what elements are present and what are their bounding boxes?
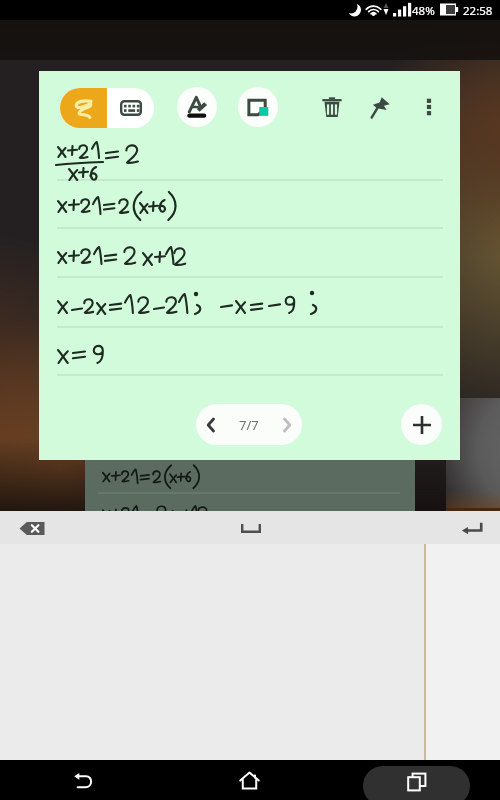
button[interactable]: Home xyxy=(166,760,333,800)
button[interactable]: More options xyxy=(415,93,443,121)
button[interactable]: Back xyxy=(0,760,166,800)
button[interactable]: Handwriting mode xyxy=(60,88,107,128)
button[interactable]: Previous page xyxy=(196,404,302,445)
button[interactable]: Delete xyxy=(318,93,346,121)
staticText: 22:58 xyxy=(463,3,493,19)
button[interactable]: Pen tool xyxy=(177,87,217,127)
button[interactable]: Next page xyxy=(272,404,302,445)
staticText: 7/7 xyxy=(239,416,259,434)
staticText: 48% xyxy=(412,3,435,19)
button[interactable]: Enter xyxy=(455,517,489,539)
button[interactable]: Recent apps xyxy=(363,766,470,800)
button[interactable]: Keyboard mode xyxy=(107,88,154,128)
button[interactable]: Page colour xyxy=(238,87,278,127)
button[interactable]: Pin xyxy=(366,93,394,121)
button[interactable]: Backspace xyxy=(15,517,49,539)
button[interactable]: Add page xyxy=(401,404,442,445)
button[interactable]: Previous page xyxy=(196,404,226,445)
button[interactable]: Space xyxy=(234,517,268,539)
